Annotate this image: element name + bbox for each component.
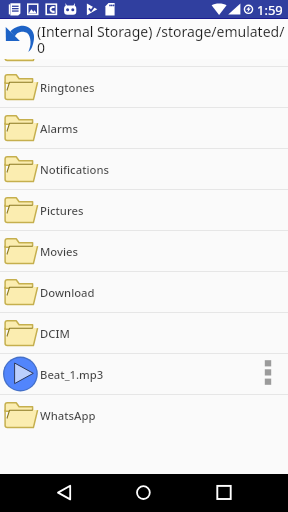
staticText: WhatsApp [40, 408, 288, 423]
button[interactable]: DCIM [0, 313, 288, 353]
staticText: Notifications [40, 162, 288, 177]
staticText: DCIM [40, 326, 288, 341]
button[interactable]: Pictures [0, 190, 288, 230]
button[interactable]: More options [258, 354, 288, 394]
button[interactable]: Movies [0, 231, 288, 271]
staticText: 1:59 [257, 1, 283, 19]
button[interactable]: Ringtones [0, 67, 288, 107]
button[interactable]: Back [0, 474, 104, 512]
staticText: Pictures [40, 203, 288, 218]
button[interactable] [0, 59, 288, 66]
button[interactable]: Beat_1.mp3 [0, 354, 288, 394]
button[interactable]: Download [0, 272, 288, 312]
button[interactable]: WhatsApp [0, 395, 288, 435]
button[interactable]: Up one level [0, 19, 37, 59]
staticText: Alarms [40, 121, 288, 136]
button[interactable]: Alarms [0, 108, 288, 148]
button[interactable]: Home [104, 474, 184, 512]
button[interactable]: Notifications [0, 149, 288, 189]
button[interactable]: Recent apps [184, 474, 288, 512]
staticText: (Internal Storage) /storage/emulated/0 [37, 22, 286, 57]
staticText: Ringtones [40, 80, 288, 95]
staticText: Download [40, 285, 288, 300]
staticText: Beat_1.mp3 [40, 367, 258, 382]
staticText: Movies [40, 244, 288, 259]
